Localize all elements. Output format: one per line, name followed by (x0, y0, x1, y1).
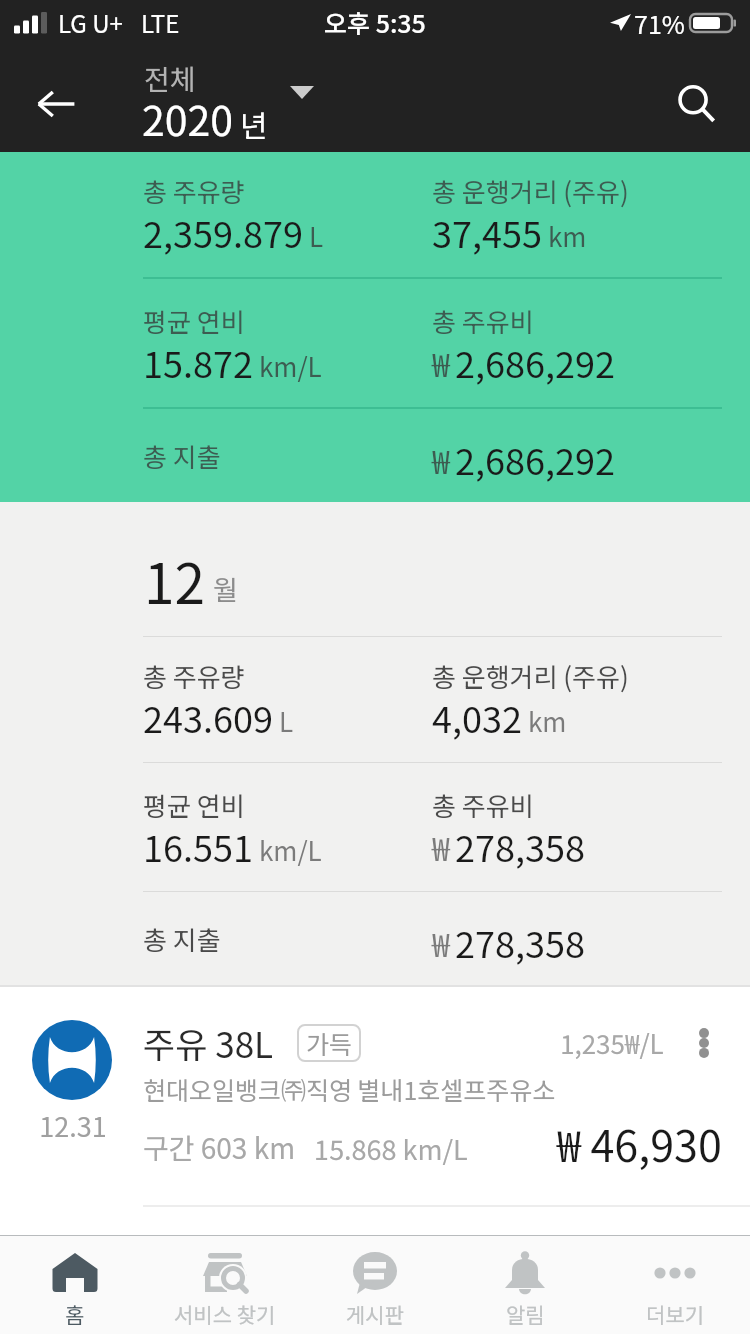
staticText: 가득 (306, 1025, 353, 1061)
staticText: L (279, 702, 294, 740)
staticText: 15.868 km/L (314, 1129, 468, 1168)
button[interactable]: 더보기 (600, 1236, 750, 1334)
button[interactable]: Search (662, 70, 730, 138)
staticText: 총 주유량 (143, 172, 245, 210)
staticText: 평균 연비 (143, 302, 245, 340)
staticText: 오후 5:35 (324, 4, 426, 40)
staticText: 1,235₩/L (560, 1024, 664, 1062)
staticText: 15.872 (143, 336, 253, 388)
staticText: 총 지출 (143, 920, 221, 958)
staticText: 현대오일뱅크㈜직영 별내1호셀프주유소 (143, 1071, 556, 1107)
staticText: 월 (213, 569, 238, 608)
staticText: km (548, 217, 587, 255)
button[interactable]: Back (22, 70, 90, 138)
staticText: ₩ (432, 920, 450, 966)
staticText: 16.551 (143, 820, 253, 872)
staticText: 전체 (144, 58, 196, 99)
staticText: 총 주유비 (432, 302, 534, 340)
button[interactable]: 전체 (0, 56, 750, 115)
staticText: 총 지출 (143, 437, 221, 475)
staticText: 4,032 (432, 691, 522, 743)
staticText: 2020 (142, 88, 234, 147)
staticText: 주유 38L (143, 1017, 274, 1068)
button[interactable]: 12.31 (0, 986, 750, 1235)
staticText: LTE (141, 5, 180, 40)
staticText: 2,686,292 (455, 433, 615, 485)
staticText: ₩ (432, 824, 450, 870)
staticText: km (528, 702, 567, 740)
button[interactable]: 게시판 (300, 1236, 450, 1334)
staticText: 2,686,292 (455, 336, 615, 388)
staticText: 총 운행거리 (주유) (432, 172, 629, 210)
staticText: 총 운행거리 (주유) (432, 657, 629, 695)
staticText: 년 (240, 102, 268, 145)
button[interactable]: 서비스 찾기 (150, 1236, 300, 1334)
staticText: LG U+ (58, 5, 123, 40)
staticText: 71% (634, 5, 685, 41)
staticText: 278,358 (455, 916, 585, 968)
staticText: 278,358 (455, 820, 585, 872)
staticText: 12.31 (33, 1106, 113, 1145)
staticText: ₩ 46,930 (557, 1112, 722, 1174)
staticText: km/L (259, 831, 322, 869)
button[interactable]: 홈 (0, 1236, 150, 1334)
staticText: 알림 (506, 1299, 545, 1329)
staticText: 37,455 (432, 206, 542, 258)
staticText: ₩ (432, 340, 450, 386)
staticText: 243.609 (143, 691, 273, 743)
staticText: 평균 연비 (143, 786, 245, 824)
staticText: 홈 (65, 1299, 85, 1329)
button[interactable]: 알림 (450, 1236, 600, 1334)
button[interactable]: More options (686, 1025, 722, 1061)
staticText: 총 주유량 (143, 657, 245, 695)
staticText: 게시판 (346, 1299, 404, 1329)
staticText: km/L (259, 347, 322, 385)
staticText: 12 (144, 540, 206, 620)
staticText: 구간 603 km (143, 1127, 296, 1168)
staticText: 더보기 (646, 1299, 704, 1329)
staticText: 2,359.879 (143, 206, 303, 258)
staticText: 총 주유비 (432, 786, 534, 824)
staticText: ₩ (432, 437, 450, 483)
staticText: 서비스 찾기 (174, 1299, 276, 1329)
staticText: L (309, 217, 324, 255)
